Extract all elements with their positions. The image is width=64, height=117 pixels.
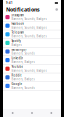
button[interactable]: Tab [22,109,42,117]
button[interactable]: Instagram [3,13,61,22]
button[interactable]: Telegram [3,30,61,39]
staticText: Banners, Sounds [11,86,34,90]
staticText: 9:41 [6,1,13,5]
staticText: Reddit [11,74,21,77]
staticText: Banners, Sounds, Badges [11,26,46,29]
button[interactable]: LinkedIn [3,56,61,65]
button[interactable]: Spotify [3,39,61,47]
staticText: Banners, Badges [11,77,34,81]
button[interactable]: Reddit [3,73,61,82]
button[interactable]: YouTube [3,65,61,73]
staticText: Banners, Badges [11,60,34,64]
staticText: Google [11,82,22,86]
staticText: Banners, Sounds, Badges [11,69,46,72]
button[interactable]: Facebook [3,22,61,30]
button[interactable]: Messenger [3,47,61,56]
staticText: Facebook [11,22,23,25]
staticText: Spotify [11,39,20,43]
staticText: Notifications [6,6,40,13]
button[interactable]: Search [55,8,58,11]
staticText: Banners, Sounds, Badges [11,34,46,38]
button[interactable]: Tab [3,109,22,117]
staticText: Banners, Sounds [11,52,34,55]
staticText: Badges [11,43,21,47]
button[interactable]: Tab [42,109,61,117]
staticText: YouTube [11,65,23,68]
staticText: Banners, Sounds, Badges [11,17,46,21]
staticText: LinkedIn [11,56,23,60]
staticText: Instagram [11,13,23,17]
staticText: Telegram [11,31,23,34]
button[interactable]: Google [3,82,61,90]
staticText: Messenger [11,48,26,51]
